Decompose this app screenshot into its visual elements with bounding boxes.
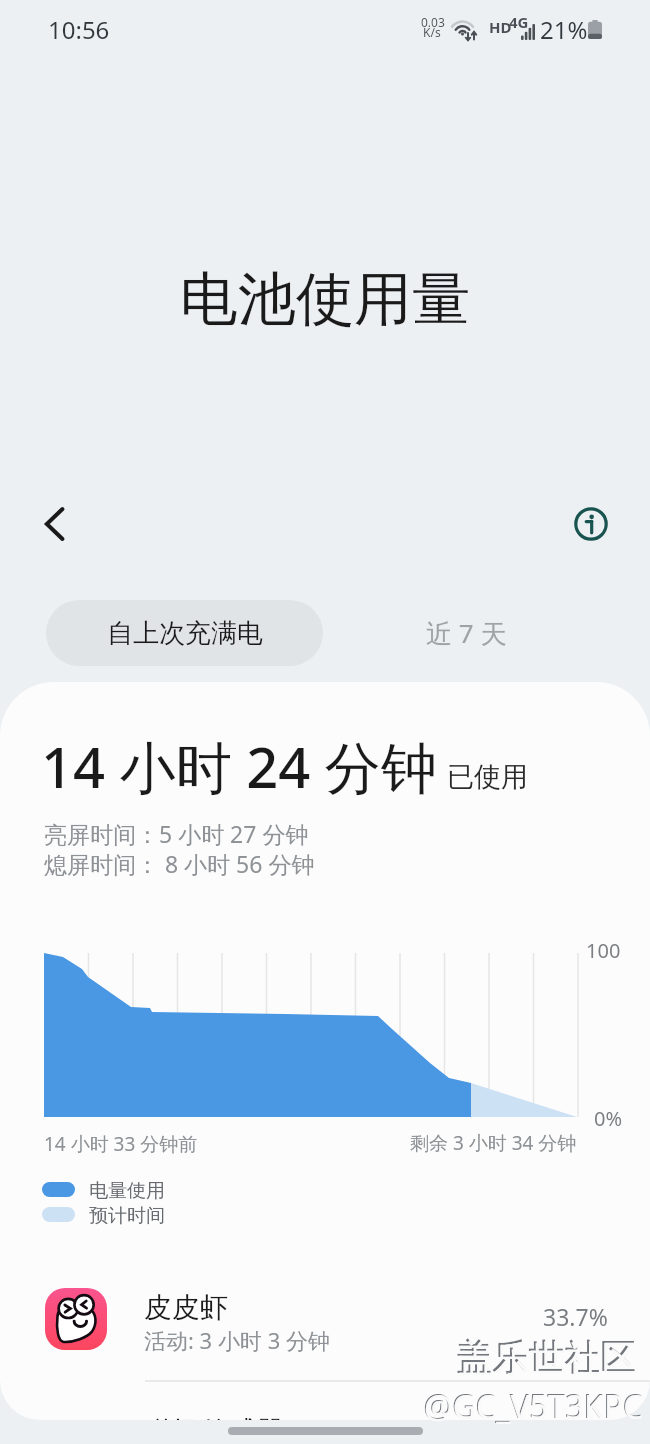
staticText: 近 7 天 [426,615,507,651]
staticText: 盖乐世社区 [458,1336,638,1381]
button[interactable]: 皮皮虾 [0,1266,650,1379]
staticText: K/s [423,24,441,40]
staticText: 0% [594,1105,623,1132]
staticText: 活动: 3 小时 3 分钟 [144,1325,330,1355]
staticText: 14 小时 33 分钟前 [44,1131,198,1157]
button[interactable]: Back [20,489,90,559]
staticText: 电池使用量 [180,263,470,336]
staticText: 电量使用 [89,1179,165,1203]
staticText: 预计时间 [89,1204,165,1228]
staticText: 已使用 [447,760,528,794]
staticText: 熄屏时间： 8 小时 56 分钟 [44,848,315,879]
staticText: 14 小时 24 分钟 [41,728,437,804]
staticText: 10:56 [48,13,110,46]
staticText: 剩余 3 小时 34 分钟 [410,1130,577,1156]
staticText: 磁场传感器 [144,1414,284,1420]
staticText: 100 [586,937,621,964]
button[interactable]: Information [556,489,626,559]
staticText: 21% [540,13,588,46]
staticText: @GC_V5T3KPC [424,1385,644,1429]
button[interactable]: 磁场传感器 [0,1381,650,1420]
staticText: 4G [509,12,529,32]
staticText: 皮皮虾 [144,1290,228,1325]
button[interactable]: 近 7 天 [386,600,546,666]
staticText: @GC_V5T3KPC [423,1384,643,1428]
staticText: HD [489,17,512,37]
staticText: 盖乐世社区 [456,1334,636,1379]
staticText: 33.7% [543,1301,608,1332]
staticText: 自上次充满电 [107,617,263,650]
button[interactable]: 自上次充满电 [46,600,323,666]
staticText: 亮屏时间：5 小时 27 分钟 [44,818,309,849]
staticText: 0.03 [421,14,445,30]
